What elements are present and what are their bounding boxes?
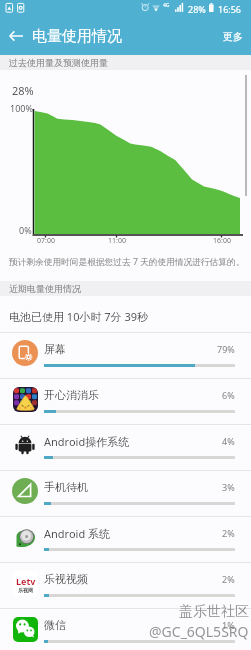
- staticText: 0%: [19, 224, 32, 236]
- staticText: 4G: [163, 2, 170, 9]
- staticText: 乐视视频: [44, 572, 88, 586]
- staticText: 乐视网: [18, 587, 33, 593]
- staticText: Android操作系统: [44, 434, 130, 449]
- staticText: 电量使用情况: [32, 27, 122, 46]
- staticText: 3%: [222, 481, 235, 493]
- button[interactable]: 更多: [213, 17, 251, 55]
- staticText: 11:00: [108, 236, 126, 246]
- staticText: @GC_6QL5SRQ: [149, 622, 249, 641]
- staticText: 2%: [222, 573, 235, 585]
- button[interactable]: 微信: [0, 608, 251, 650]
- button[interactable]: Android 系统: [0, 516, 251, 562]
- staticText: Android 系统: [44, 526, 111, 541]
- staticText: 更多: [223, 30, 243, 43]
- staticText: 电池已使用 10小时 7分 39秒: [9, 309, 149, 324]
- staticText: 微信: [44, 618, 66, 632]
- staticText: 近期电量使用情况: [9, 283, 81, 294]
- staticText: 盖乐世社区: [179, 603, 249, 621]
- staticText: 100%: [10, 102, 33, 114]
- staticText: 6%: [222, 389, 235, 401]
- staticText: Letv: [16, 575, 36, 587]
- staticText: 屏幕: [44, 342, 66, 356]
- staticText: 1%: [222, 619, 235, 631]
- staticText: 16:00: [213, 236, 231, 246]
- staticText: 28%: [12, 83, 34, 98]
- staticText: 79%: [217, 343, 235, 355]
- staticText: 16:56: [218, 3, 242, 15]
- staticText: 28%: [188, 3, 206, 15]
- button[interactable]: 手机待机: [0, 470, 251, 516]
- staticText: 2%: [222, 527, 235, 539]
- staticText: 4%: [222, 435, 235, 447]
- staticText: 过去使用量及预测使用量: [9, 57, 108, 68]
- button[interactable]: 返回: [0, 17, 32, 55]
- button[interactable]: 屏幕: [0, 332, 251, 378]
- staticText: 预计剩余使用时间是根据您过去 7 天的使用情况进行估算的。: [9, 256, 245, 268]
- button[interactable]: Letv: [0, 562, 251, 608]
- staticText: 手机待机: [44, 480, 88, 494]
- staticText: 07:00: [37, 236, 55, 246]
- staticText: 开心消消乐: [44, 388, 99, 402]
- button[interactable]: Android操作系统: [0, 424, 251, 470]
- button[interactable]: 开心消消乐: [0, 378, 251, 424]
